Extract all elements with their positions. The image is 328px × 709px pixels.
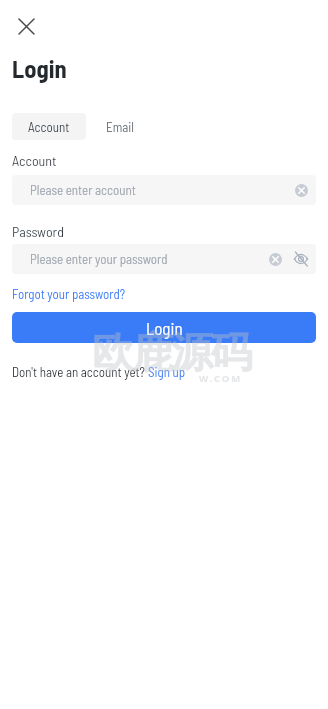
staticText: Password xyxy=(12,223,64,240)
staticText: Please enter your password xyxy=(30,251,168,267)
staticText: Login xyxy=(146,318,183,338)
button[interactable] xyxy=(12,12,41,41)
staticText: Email xyxy=(106,119,135,135)
staticText: W.COM xyxy=(199,372,243,385)
staticText: Forgot your password? xyxy=(12,286,126,302)
button[interactable]: Email xyxy=(106,113,135,140)
staticText: Please enter account xyxy=(30,182,136,198)
button[interactable]: Forgot your password? xyxy=(12,286,126,302)
staticText: Account xyxy=(12,152,57,169)
staticText: Don't have an account yet? xyxy=(12,364,148,380)
button[interactable]: Account xyxy=(12,113,86,140)
button[interactable]: Please enter account xyxy=(12,175,316,205)
staticText: 欧鹿源码 xyxy=(93,327,251,380)
button[interactable]: Sign up xyxy=(148,364,186,380)
staticText: Login xyxy=(12,53,67,82)
button[interactable]: Login xyxy=(12,312,316,343)
button[interactable]: Please enter your password xyxy=(12,244,316,274)
staticText: Account xyxy=(28,119,70,135)
staticText: Sign up xyxy=(148,364,186,380)
